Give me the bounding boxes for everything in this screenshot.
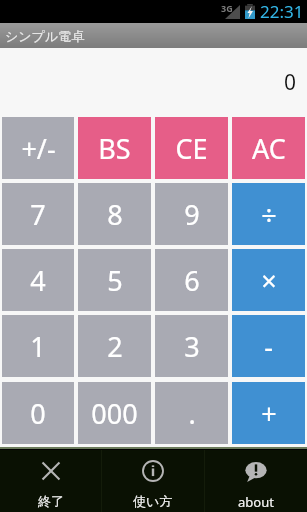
button[interactable]: 1 — [2, 315, 74, 377]
button[interactable]: 6 — [155, 249, 228, 311]
button[interactable]: . — [155, 382, 228, 444]
staticText: 0 — [30, 395, 46, 432]
staticText: - — [264, 328, 273, 365]
staticText: 4 — [30, 262, 46, 299]
other: Battery charging — [245, 4, 255, 19]
button[interactable]: 000 — [78, 382, 151, 444]
button[interactable]: + — [232, 382, 305, 444]
other: About — [245, 460, 267, 482]
staticText: シンプル電卓 — [5, 28, 85, 44]
staticText: 7 — [30, 196, 46, 233]
button[interactable]: 3 — [155, 315, 228, 377]
staticText: 1 — [30, 328, 46, 365]
staticText: BS — [98, 130, 131, 167]
staticText: 3 — [184, 328, 200, 365]
other: Signal strength — [225, 5, 240, 19]
button[interactable]: +/- — [2, 117, 74, 179]
other: Usage — [142, 460, 164, 482]
staticText: CE — [175, 130, 208, 167]
staticText: 2 — [107, 328, 123, 365]
staticText: +/- — [21, 130, 56, 167]
button[interactable]: Exit — [0, 450, 101, 512]
staticText: 5 — [107, 262, 123, 299]
staticText: 0 — [284, 68, 297, 97]
staticText: 8 — [107, 196, 123, 233]
button[interactable]: 9 — [155, 183, 228, 245]
staticText: 終了 — [38, 493, 64, 509]
staticText: 6 — [184, 262, 200, 299]
staticText: 22:31 — [260, 0, 304, 23]
staticText: AC — [252, 130, 286, 167]
button[interactable]: CE — [155, 117, 228, 179]
staticText: ÷ — [261, 196, 277, 233]
other: Exit — [40, 460, 62, 482]
staticText: 使い方 — [133, 493, 173, 509]
button[interactable]: About — [205, 450, 307, 512]
staticText: × — [261, 262, 277, 299]
button[interactable]: ÷ — [232, 183, 305, 245]
button[interactable]: 0 — [2, 382, 74, 444]
button[interactable]: BS — [78, 117, 151, 179]
button[interactable]: - — [232, 315, 305, 377]
staticText: . — [188, 395, 196, 432]
staticText: 9 — [184, 196, 200, 233]
staticText: + — [261, 395, 277, 432]
button[interactable]: 8 — [78, 183, 151, 245]
button[interactable]: × — [232, 249, 305, 311]
button[interactable]: 7 — [2, 183, 74, 245]
staticText: 000 — [91, 395, 138, 432]
button[interactable]: AC — [232, 117, 305, 179]
staticText: 3G — [221, 2, 233, 14]
staticText: about — [238, 493, 274, 511]
button[interactable]: 2 — [78, 315, 151, 377]
button[interactable]: 4 — [2, 249, 74, 311]
button[interactable]: Usage — [102, 450, 204, 512]
button[interactable]: 5 — [78, 249, 151, 311]
